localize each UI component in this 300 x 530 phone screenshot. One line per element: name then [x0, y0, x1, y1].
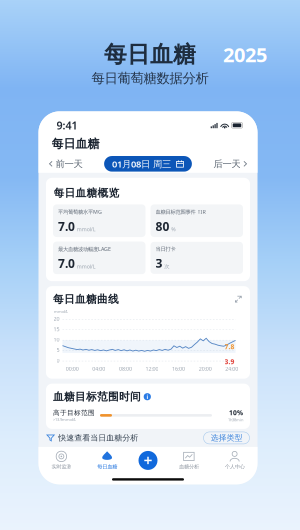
staticText: 每日血糖	[104, 41, 196, 68]
staticText: 20:00	[199, 365, 212, 372]
button[interactable]: 前一天	[45, 157, 86, 171]
staticText: 7.0	[58, 255, 75, 271]
staticText: 实时监测	[51, 463, 71, 470]
staticText: 后一天	[213, 158, 240, 170]
staticText: %	[171, 226, 175, 233]
staticText: 次	[164, 263, 169, 270]
staticText: 5	[56, 346, 59, 353]
staticText: 80	[155, 218, 169, 234]
staticText: 高于目标范围	[53, 409, 95, 417]
staticText: 每日血糖概览	[53, 186, 119, 199]
staticText: 1h38min	[228, 417, 243, 422]
staticText: 08:00	[119, 365, 132, 372]
button[interactable]: Add record	[136, 448, 160, 472]
staticText: 快速查看当日血糖分析	[58, 433, 138, 443]
button[interactable]: Expand chart	[234, 295, 243, 304]
button[interactable]: 选择类型	[203, 432, 249, 444]
staticText: 每日葡萄糖数据分析	[91, 70, 208, 86]
staticText: mmol/L	[77, 263, 96, 270]
button[interactable]: 后一天	[210, 157, 250, 171]
staticText: 最大血糖波动幅度LAGE	[58, 245, 111, 252]
button[interactable]: 快速查看当日血糖分析	[46, 431, 138, 444]
button[interactable]: 个人中心	[212, 447, 258, 473]
staticText: 7.0	[58, 218, 75, 234]
staticText: 15	[53, 325, 59, 333]
staticText: 10	[53, 336, 59, 343]
staticText: 04:00	[92, 365, 105, 372]
staticText: 01月08日 周三	[112, 158, 171, 170]
staticText: 3	[155, 255, 162, 271]
staticText: 24:00	[225, 365, 238, 372]
staticText: 每日血糖	[51, 136, 99, 151]
staticText: 血糖目标范围事件 TIR	[155, 208, 205, 215]
staticText: 血糖目标范围时间	[53, 390, 141, 403]
staticText: 平均葡萄糖水平MG	[58, 208, 102, 215]
staticText: 7.8	[224, 342, 234, 351]
staticText: 0	[56, 357, 59, 364]
button[interactable]: 实时监测	[38, 447, 84, 473]
staticText: 20	[53, 315, 59, 322]
staticText: 2025	[223, 41, 267, 68]
staticText: mmol/L	[77, 226, 96, 233]
staticText: 16:00	[172, 365, 185, 372]
staticText: mmol/L	[54, 309, 68, 314]
staticText: 个人中心	[225, 463, 245, 470]
staticText: 12:00	[145, 365, 158, 372]
staticText: 选择类型	[210, 433, 242, 443]
staticText: 10%	[229, 408, 243, 417]
staticText: 当日打卡	[155, 246, 175, 252]
button[interactable]: 01月08日 周三	[104, 156, 192, 172]
button[interactable]: 血糖分析	[166, 447, 212, 473]
staticText: 每日血糖	[97, 463, 117, 470]
staticText: 00:00	[66, 365, 79, 372]
button[interactable]: 每日血糖	[84, 447, 130, 473]
staticText: 血糖分析	[179, 463, 199, 470]
staticText: 每日血糖曲线	[53, 293, 119, 306]
staticText: 9:41	[56, 118, 77, 132]
staticText: 前一天	[56, 158, 83, 170]
staticText: >13.9mmol/L	[53, 417, 76, 422]
staticText: 3.9	[224, 357, 234, 366]
